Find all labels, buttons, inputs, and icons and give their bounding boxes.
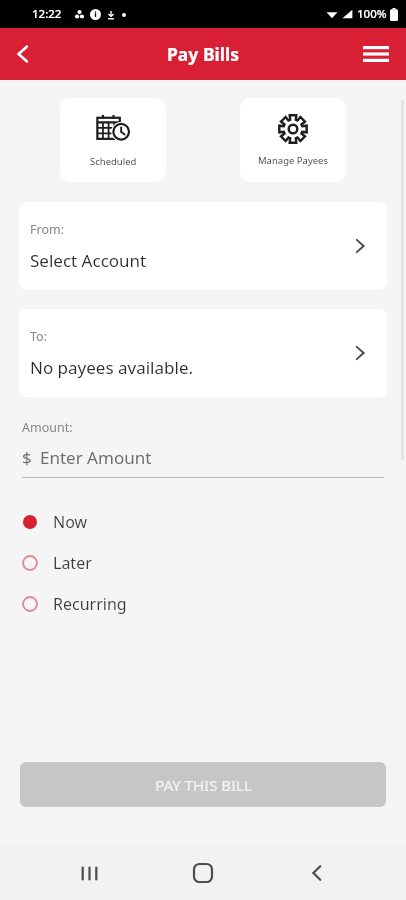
button[interactable]: Recent apps xyxy=(64,848,114,898)
button[interactable]: Scheduled xyxy=(60,98,166,182)
staticText: Recurring xyxy=(53,593,127,615)
staticText: Scheduled xyxy=(90,155,137,168)
staticText: Amount: xyxy=(22,419,73,436)
staticText: Select Account xyxy=(30,249,147,272)
staticText: Pay Bills xyxy=(167,42,239,66)
button[interactable]: Menu xyxy=(354,32,398,76)
staticText: $ xyxy=(22,446,32,469)
staticText: 100% xyxy=(357,6,387,22)
staticText: 12:22 xyxy=(32,6,62,22)
button[interactable]: $ xyxy=(22,446,384,469)
button[interactable]: Home xyxy=(178,848,228,898)
button[interactable]: Back xyxy=(292,848,342,898)
staticText: No payees available. xyxy=(30,356,194,379)
button[interactable]: Recurring xyxy=(22,590,384,618)
button[interactable]: Manage Payees xyxy=(240,98,346,182)
staticText: PAY THIS BILL xyxy=(155,775,252,795)
button[interactable]: From: xyxy=(19,202,387,290)
staticText: To: xyxy=(30,328,47,345)
button[interactable]: PAY THIS BILL xyxy=(20,762,386,807)
staticText: From: xyxy=(30,221,65,238)
staticText: Now xyxy=(53,511,88,533)
button[interactable]: To: xyxy=(19,309,387,397)
staticText: Later xyxy=(53,552,92,574)
button[interactable]: Now xyxy=(22,508,384,536)
button[interactable]: Later xyxy=(22,549,384,577)
button[interactable]: Back xyxy=(0,31,46,77)
staticText: Manage Payees xyxy=(258,154,329,167)
staticText: Enter Amount xyxy=(40,446,152,469)
